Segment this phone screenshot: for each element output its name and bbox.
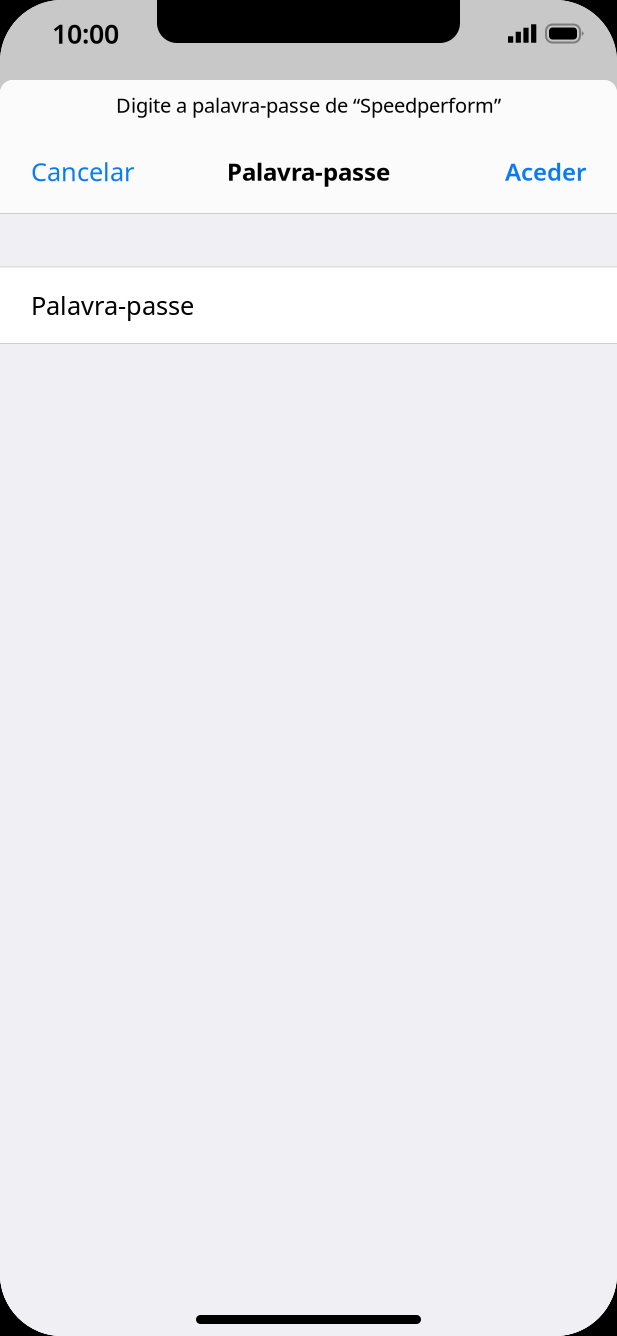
staticText: Palavra-passe [31, 288, 194, 322]
button[interactable]: Cancelar [31, 130, 134, 213]
staticText: 10:00 [52, 16, 119, 51]
button[interactable]: Palavra-passe [0, 267, 617, 343]
button[interactable]: Aceder [505, 130, 586, 213]
staticText: Cancelar [31, 155, 134, 188]
staticText: Palavra-passe [227, 156, 390, 187]
staticText: Aceder [505, 156, 586, 187]
staticText: Digite a palavra-passe de “Speedperform” [116, 92, 501, 118]
